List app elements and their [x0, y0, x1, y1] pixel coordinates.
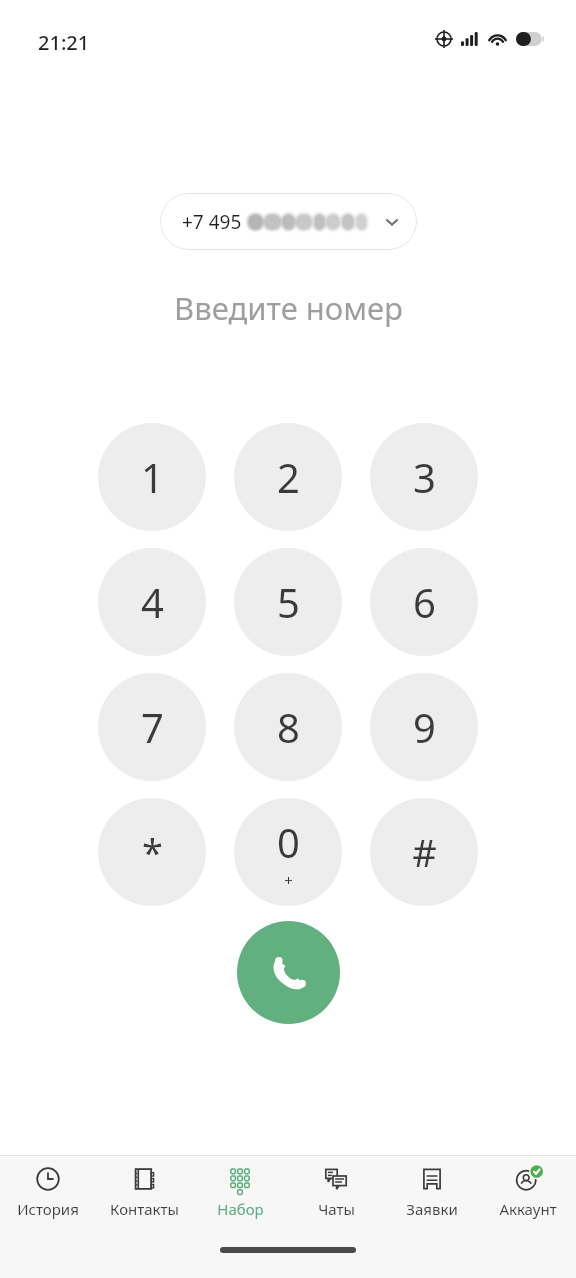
staticText: 2: [277, 450, 300, 504]
staticText: 1: [141, 450, 164, 504]
button[interactable]: 1: [98, 423, 206, 531]
staticText: 21:21: [38, 29, 90, 56]
staticText: 0: [277, 815, 300, 869]
button[interactable]: 8: [234, 673, 342, 781]
staticText: #: [412, 826, 437, 878]
button[interactable]: Чаты: [288, 1156, 384, 1234]
button[interactable]: 9: [370, 673, 478, 781]
staticText: Аккаунт: [499, 1199, 557, 1219]
staticText: Контакты: [110, 1199, 179, 1219]
button[interactable]: +7 495: [160, 193, 417, 250]
staticText: Введите номер: [174, 287, 403, 329]
staticText: 9: [413, 700, 436, 754]
staticText: Набор: [217, 1199, 264, 1219]
staticText: 4: [141, 575, 164, 629]
button[interactable]: Заявки: [384, 1156, 480, 1234]
staticText: +: [284, 870, 293, 890]
staticText: 6: [413, 575, 436, 629]
button[interactable]: История: [0, 1156, 96, 1234]
button[interactable]: 6: [370, 548, 478, 656]
button[interactable]: 0: [234, 798, 342, 906]
button[interactable]: Аккаунт: [480, 1156, 576, 1234]
button[interactable]: 4: [98, 548, 206, 656]
button[interactable]: Набор: [192, 1156, 288, 1234]
button[interactable]: Контакты: [96, 1156, 192, 1234]
button[interactable]: 5: [234, 548, 342, 656]
button[interactable]: #: [370, 798, 478, 906]
button[interactable]: 3: [370, 423, 478, 531]
staticText: 5: [277, 575, 300, 629]
staticText: +7 495: [182, 209, 247, 235]
staticText: 8: [277, 700, 300, 754]
staticText: Чаты: [318, 1199, 355, 1219]
button[interactable]: 7: [98, 673, 206, 781]
staticText: Заявки: [406, 1199, 458, 1219]
button[interactable]: 2: [234, 423, 342, 531]
button[interactable]: Позвонить: [237, 921, 340, 1024]
staticText: 7: [141, 700, 164, 754]
staticText: 3: [413, 450, 436, 504]
staticText: История: [17, 1199, 79, 1219]
staticText: *: [142, 826, 163, 878]
button[interactable]: *: [98, 798, 206, 906]
